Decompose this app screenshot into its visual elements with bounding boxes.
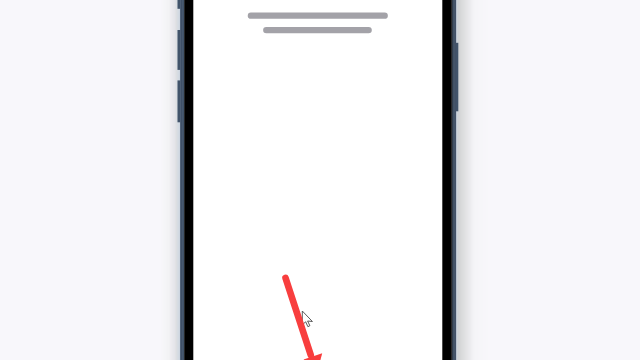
button[interactable]: Volume up: [177, 30, 181, 70]
button[interactable]: Loading item: [247, 8, 388, 38]
button[interactable]: Power: [455, 43, 459, 112]
button[interactable]: Volume down: [177, 80, 181, 122]
